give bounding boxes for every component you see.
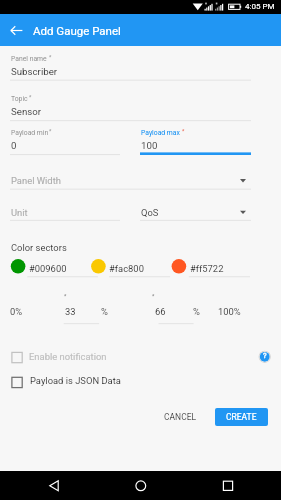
staticText: Payload is JSON Data	[30, 375, 121, 386]
staticText: ?	[263, 351, 267, 360]
staticText: 66	[155, 306, 166, 317]
staticText: Enable notification	[29, 351, 107, 362]
staticText: Panel Width	[11, 175, 61, 186]
staticText: #009600	[29, 263, 67, 274]
staticText: Topic	[11, 95, 28, 103]
staticText: 100	[141, 140, 158, 151]
button[interactable]: Back	[6, 20, 27, 41]
staticText: #fac800	[109, 263, 144, 274]
staticText: 33	[65, 306, 76, 317]
staticText: 0%	[10, 306, 23, 317]
staticText: %	[193, 306, 200, 317]
staticText: Add Gauge Panel	[33, 24, 121, 37]
staticText: *	[64, 293, 67, 299]
staticText: *	[49, 128, 52, 134]
staticText: Panel name	[11, 55, 47, 63]
button[interactable]: CREATE	[215, 408, 268, 426]
staticText: Unit	[11, 207, 28, 218]
staticText: 100%	[218, 306, 241, 317]
staticText: CANCEL	[164, 412, 197, 422]
staticText: Payload max	[141, 129, 180, 137]
staticText: Color sectors	[11, 242, 67, 253]
button[interactable]: CANCEL	[156, 408, 205, 426]
staticText: QoS	[141, 207, 159, 218]
staticText: *	[29, 94, 32, 100]
staticText: %	[101, 306, 108, 317]
staticText: CREATE	[226, 412, 257, 422]
staticText: #ff5722	[190, 263, 224, 274]
staticText: *	[49, 54, 52, 60]
staticText: *	[182, 128, 185, 134]
staticText: 4:05 PM	[245, 2, 275, 11]
staticText: 0	[11, 140, 17, 151]
staticText: Subscriber	[11, 66, 58, 77]
staticText: Payload min	[11, 129, 49, 137]
button[interactable]: Help	[254, 346, 275, 367]
staticText: Sensor	[11, 106, 42, 117]
staticText: *	[152, 293, 155, 299]
